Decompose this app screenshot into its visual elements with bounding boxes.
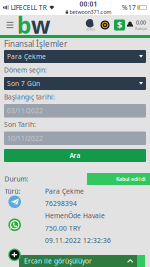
button[interactable]: Menu [3, 15, 17, 35]
staticText: Durum: [4, 175, 28, 183]
staticText: 10/11/2022 [7, 134, 43, 143]
staticText: 76298394 [45, 199, 77, 208]
staticText: w [31, 10, 50, 40]
button[interactable]: Home [17, 15, 50, 35]
staticText: %17 [122, 3, 136, 12]
staticText: Destek [85, 28, 94, 31]
staticText: 00:01 [79, 0, 97, 8]
staticText: Para Çekme [7, 52, 46, 61]
staticText: Başlangıç tarihi: [4, 93, 55, 101]
staticText: b [17, 10, 31, 40]
staticText: Son Tarih: [4, 120, 36, 129]
button[interactable]: Ara [0, 145, 150, 162]
staticText: Bakiye [135, 26, 147, 31]
staticText: Türü: [4, 187, 20, 196]
staticText: 03/11/2022 [7, 106, 43, 115]
button[interactable]: WhatsApp [8, 218, 21, 231]
staticText: 09.11.2022 12:32:36 [45, 236, 111, 245]
staticText: Ara [69, 151, 80, 160]
button[interactable]: Account [126, 16, 147, 34]
staticText: Ercan ile görüşülüyor [24, 257, 92, 265]
staticText: 750.00 TRY [45, 224, 81, 232]
button[interactable]: Para Çekme [0, 50, 150, 63]
button[interactable]: Son 7 Gün [0, 77, 150, 90]
button[interactable]: Wheel [97, 16, 112, 34]
button[interactable]: Ercan ile görüşülüyor [19, 255, 137, 267]
staticText: $ [117, 19, 122, 31]
staticText: Para Çekme [45, 187, 84, 196]
button[interactable]: Deposit [112, 16, 126, 34]
staticText: HemenÖde Havale [45, 211, 105, 220]
button[interactable]: 10/11/2022 [0, 131, 150, 145]
staticText: betwoon371.com [69, 8, 111, 15]
staticText: Finansal İşlemler [4, 39, 67, 49]
button[interactable]: Support [82, 16, 97, 34]
staticText: LIFECELL TR [11, 3, 47, 12]
button[interactable]: 03/11/2022 [0, 104, 150, 117]
staticText: Dönem seçin: [4, 66, 47, 74]
button[interactable]: New chat [8, 248, 21, 261]
button[interactable]: Telegram [8, 195, 21, 208]
staticText: 0.00 [136, 19, 146, 26]
staticText: Kabul edildi [116, 175, 146, 183]
staticText: Son 7 Gün [7, 79, 40, 88]
